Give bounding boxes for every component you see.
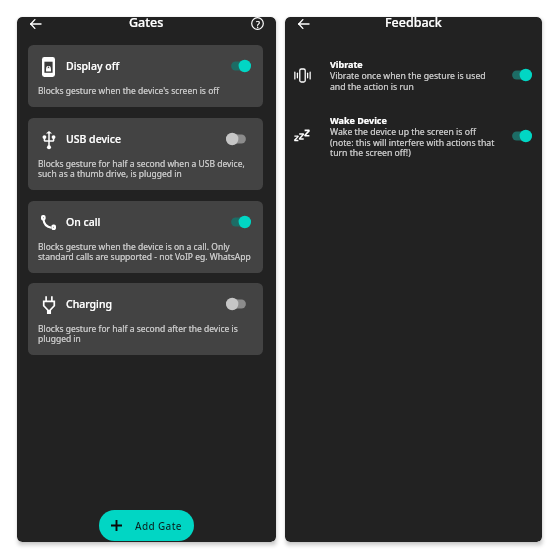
staticText: Add Gate — [135, 519, 182, 533]
button[interactable]: Charging — [28, 283, 263, 355]
staticText: USB device — [66, 132, 121, 146]
staticText: On call — [66, 215, 101, 229]
staticText: Gates — [129, 17, 164, 27]
staticText: Blocks gesture when the device is on a c… — [38, 241, 263, 262]
staticText: Display off — [66, 59, 120, 73]
staticText: Wake Device — [330, 114, 387, 126]
button[interactable]: USB device — [28, 118, 263, 190]
staticText: Charging — [66, 297, 113, 311]
button[interactable]: Add Gate — [99, 510, 194, 541]
staticText: Vibrate once when the gesture is used an… — [330, 70, 486, 93]
staticText: Blocks gesture when the device's screen … — [38, 85, 263, 97]
staticText: Vibrate — [330, 58, 363, 70]
staticText: Blocks gesture for half a second when a … — [38, 158, 263, 179]
button[interactable]: Vibrate — [289, 55, 532, 95]
staticText: Feedback — [385, 17, 442, 27]
button[interactable]: Help — [250, 17, 264, 30]
staticText: ? — [256, 18, 260, 30]
button[interactable]: Display off — [28, 45, 263, 107]
staticText: Wake the device up the screen is off (no… — [330, 126, 495, 159]
button[interactable]: Back — [29, 17, 42, 30]
button[interactable]: Wake Device — [289, 110, 532, 162]
staticText: Blocks gesture for half a second after t… — [38, 323, 263, 344]
button[interactable]: Back — [297, 17, 310, 30]
button[interactable]: On call — [28, 201, 263, 273]
